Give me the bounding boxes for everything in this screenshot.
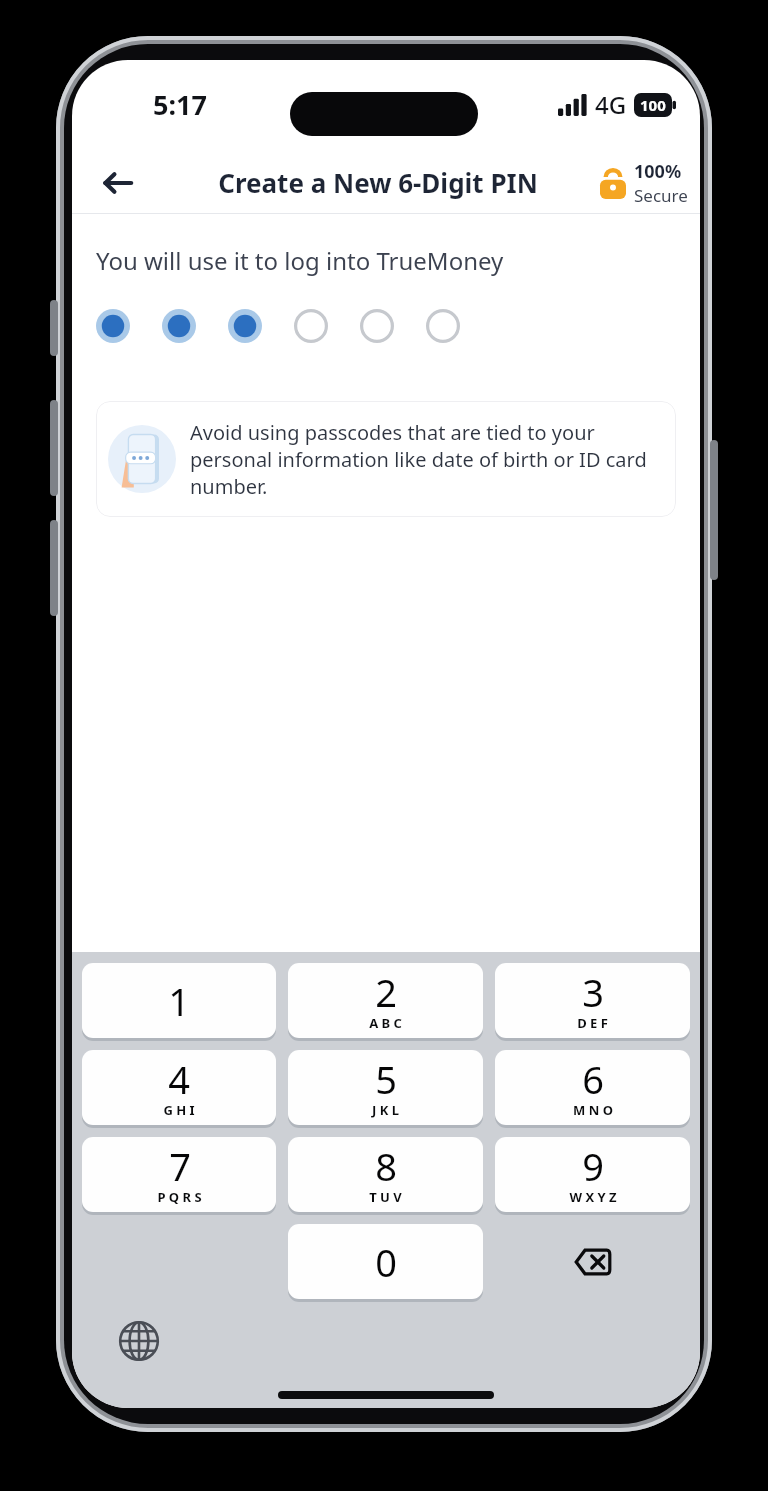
- button[interactable]: 7: [82, 1137, 276, 1212]
- button[interactable]: 8: [288, 1137, 483, 1212]
- button[interactable]: 4: [82, 1050, 276, 1125]
- staticText: 0: [375, 1236, 397, 1288]
- button[interactable]: 1: [82, 963, 276, 1038]
- staticText: Create a New 6-Digit PIN: [218, 165, 538, 200]
- staticText: 1: [168, 975, 190, 1027]
- staticText: T U V: [369, 1188, 402, 1206]
- staticText: 7: [169, 1140, 191, 1192]
- button[interactable]: Back: [96, 161, 140, 205]
- staticText: 3: [582, 966, 604, 1018]
- button[interactable]: 2: [288, 963, 483, 1038]
- staticText: A B C: [369, 1014, 402, 1032]
- staticText: D E F: [577, 1014, 608, 1032]
- button[interactable]: 100%: [600, 159, 688, 207]
- staticText: You will use it to log into TrueMoney: [96, 244, 504, 277]
- button[interactable]: 3: [495, 963, 690, 1038]
- staticText: 8: [375, 1140, 397, 1192]
- button[interactable]: 6: [495, 1050, 690, 1125]
- staticText: 4G: [595, 88, 627, 121]
- staticText: W X Y Z: [569, 1188, 617, 1206]
- staticText: 5: [375, 1053, 397, 1105]
- staticText: 4: [168, 1053, 190, 1105]
- button[interactable]: 5: [288, 1050, 483, 1125]
- button[interactable]: Avoid using passcodes that are tied to y…: [96, 401, 676, 517]
- staticText: P Q R S: [157, 1188, 202, 1206]
- staticText: 100: [640, 95, 666, 115]
- button[interactable]: Delete: [495, 1224, 690, 1299]
- button[interactable]: Change keyboard language: [116, 1318, 162, 1364]
- staticText: G H I: [163, 1101, 195, 1119]
- staticText: M N O: [573, 1101, 613, 1119]
- staticText: Avoid using passcodes that are tied to y…: [190, 419, 660, 500]
- button[interactable]: 0: [288, 1224, 483, 1299]
- staticText: 6: [582, 1053, 604, 1105]
- staticText: 2: [375, 966, 397, 1018]
- staticText: Secure: [634, 184, 688, 207]
- staticText: 5:17: [153, 86, 207, 123]
- staticText: J K L: [372, 1101, 399, 1119]
- button[interactable]: 9: [495, 1137, 690, 1212]
- staticText: 100%: [634, 159, 682, 184]
- staticText: 9: [582, 1140, 604, 1192]
